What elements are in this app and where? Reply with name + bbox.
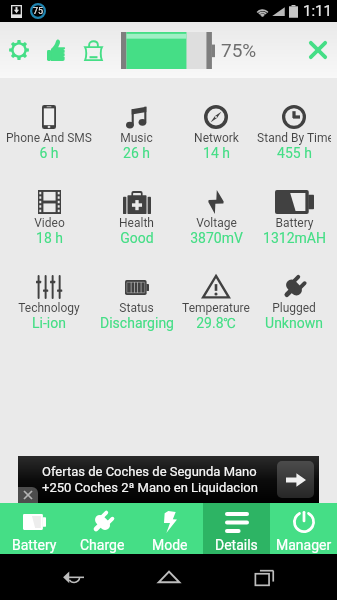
button[interactable]: Battery [0,503,68,554]
staticText: Health [119,216,154,230]
button[interactable]: Stand By Time [257,105,331,161]
staticText: Li-ion [32,315,66,331]
button[interactable]: Mode [136,503,203,554]
staticText: Details [215,537,258,553]
button[interactable]: Phone And SMS [0,105,98,161]
button[interactable]: Close ad [18,487,38,503]
staticText: 75% [221,39,257,61]
staticText: 1:11 [303,2,332,20]
button[interactable]: Network [175,105,257,161]
button[interactable]: Back [50,554,96,600]
staticText: Status [119,301,154,315]
staticText: Stand By Time [257,131,331,145]
staticText: Network [194,131,239,145]
staticText: 6 h [39,145,59,161]
button[interactable]: Rate app [47,39,65,61]
staticText: 29.8℃ [196,315,236,331]
button[interactable]: Technology [0,275,98,331]
staticText: 455 h [277,145,312,161]
button[interactable]: Battery [257,190,331,246]
staticText: Temperature [182,301,250,315]
staticText: Plugged [272,301,316,315]
staticText: Battery [12,537,57,553]
button[interactable]: Settings [9,40,29,60]
button[interactable]: Recent apps [241,554,287,600]
button[interactable]: Open advertisement [277,461,314,498]
button[interactable]: Home [146,554,192,600]
staticText: 26 h [123,145,150,161]
staticText: Manager [276,537,332,553]
staticText: Discharging [100,315,174,331]
button[interactable]: Charge [68,503,136,554]
staticText: Phone And SMS [6,131,92,145]
button[interactable]: Music [98,105,175,161]
staticText: Mode [152,537,188,553]
button[interactable]: Temperature [175,275,257,331]
button[interactable]: Plugged [257,275,331,331]
button[interactable]: Ofertas de Coches de Segunda Mano [18,456,319,503]
staticText: Unknown [265,315,323,331]
staticText: +250 Coches 2ª Mano en Liquidacion [42,480,258,495]
staticText: Technology [18,301,80,315]
staticText: Voltage [196,216,237,230]
button[interactable]: Details [203,503,270,554]
button[interactable]: Voltage [175,190,257,246]
staticText: Music [120,131,153,145]
staticText: Good [120,230,154,246]
button[interactable]: More apps [84,40,103,61]
button[interactable]: Close [309,41,327,59]
staticText: Battery [275,216,314,230]
staticText: 18 h [36,230,63,246]
staticText: 3870mV [190,230,243,246]
staticText: Charge [80,537,125,553]
staticText: 1312mAH [263,230,326,246]
staticText: 75 [33,6,44,17]
button[interactable]: Status [98,275,175,331]
staticText: Ofertas de Coches de Segunda Mano [42,464,257,479]
staticText: 14 h [203,145,230,161]
button[interactable]: Video [0,190,98,246]
button[interactable]: Health [98,190,175,246]
staticText: Video [34,216,65,230]
button[interactable]: Manager [270,503,337,554]
